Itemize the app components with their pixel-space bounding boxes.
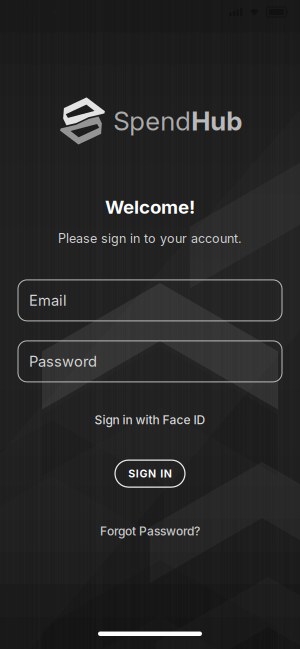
staticText: SIGN IN xyxy=(128,467,172,480)
staticText: Sign in with Face ID xyxy=(94,413,205,427)
staticText: Welcome! xyxy=(105,196,195,218)
staticText: Password xyxy=(29,353,97,370)
staticText: Hub xyxy=(191,105,242,136)
staticText: Email xyxy=(29,292,67,309)
staticText: Spend xyxy=(113,105,191,136)
staticText: Forgot Password? xyxy=(100,524,200,538)
staticText: Please sign in to your account. xyxy=(58,231,242,246)
